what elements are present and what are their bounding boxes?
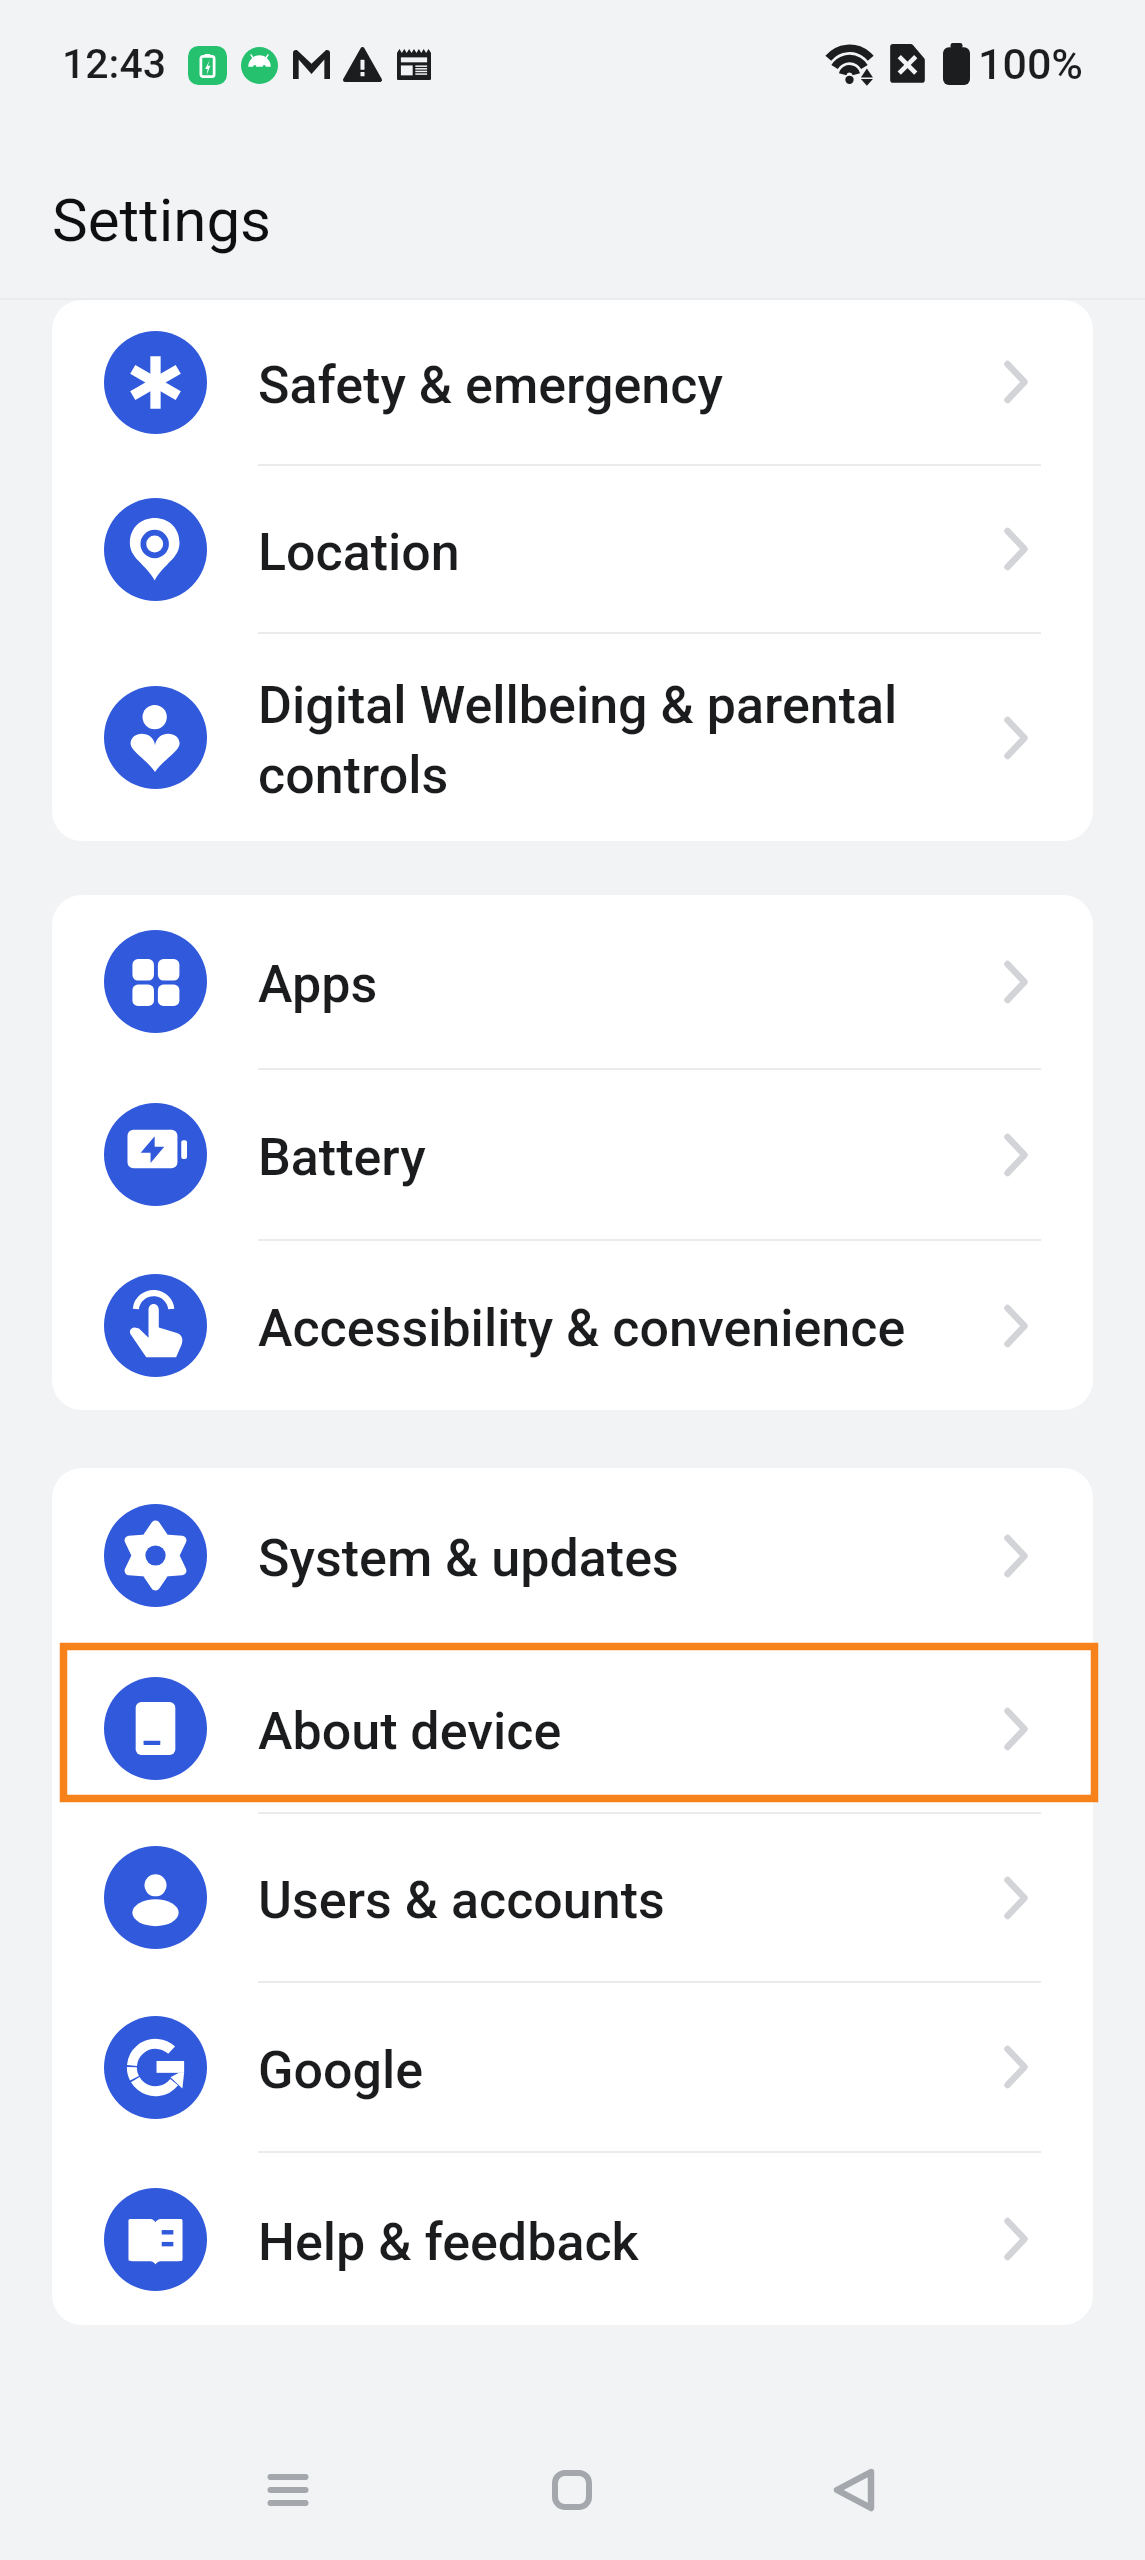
button[interactable]: System & updates bbox=[52, 1468, 1093, 1643]
button[interactable]: Help & feedback bbox=[52, 2153, 1093, 2325]
staticText: Digital Wellbeing & parental controls bbox=[258, 675, 991, 806]
staticText: Help & feedback bbox=[258, 2212, 991, 2273]
button[interactable]: Recent apps bbox=[238, 2440, 338, 2540]
staticText: Safety & emergency bbox=[258, 355, 991, 416]
button[interactable]: Apps bbox=[52, 895, 1093, 1068]
button[interactable]: About device bbox=[52, 1645, 1093, 1812]
button[interactable]: Accessibility & convenience bbox=[52, 1241, 1093, 1410]
button[interactable]: Safety & emergency bbox=[52, 300, 1093, 464]
staticText: Location bbox=[258, 522, 991, 583]
button[interactable]: Battery bbox=[52, 1070, 1093, 1239]
button[interactable]: Back bbox=[802, 2440, 902, 2540]
button[interactable]: Home bbox=[522, 2440, 622, 2540]
staticText: Battery bbox=[258, 1127, 991, 1188]
button[interactable]: Digital Wellbeing & parental controls bbox=[52, 634, 1093, 841]
staticText: Apps bbox=[258, 954, 991, 1015]
staticText: Google bbox=[258, 2040, 991, 2101]
staticText: 100% bbox=[978, 39, 1083, 89]
staticText: Settings bbox=[52, 185, 272, 255]
button[interactable]: Location bbox=[52, 466, 1093, 632]
button[interactable]: Users & accounts bbox=[52, 1814, 1093, 1981]
staticText: About device bbox=[258, 1701, 991, 1762]
staticText: System & updates bbox=[258, 1528, 991, 1589]
staticText: 12:43 bbox=[62, 40, 167, 88]
staticText: Accessibility & convenience bbox=[258, 1298, 991, 1359]
staticText: Users & accounts bbox=[258, 1870, 991, 1931]
button[interactable]: Google bbox=[52, 1983, 1093, 2151]
